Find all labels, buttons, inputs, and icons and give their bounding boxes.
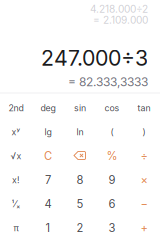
staticText: 4 [44,197,51,211]
staticText: − [140,197,147,211]
staticText: sin [74,103,86,113]
staticText: = 2.109.000 [93,14,148,26]
staticText: 3 [108,221,115,235]
button[interactable]: ( [96,120,128,144]
button[interactable]: 3 [96,216,128,240]
staticText: % [106,149,117,163]
staticText: = 82.333,3333 [68,75,148,89]
staticText: √x [10,151,21,161]
button[interactable]: deg [32,96,64,120]
staticText: tan [137,103,150,113]
button[interactable]: x! [0,168,32,192]
staticText: ÷ [140,149,147,163]
staticText: cos [104,103,119,113]
staticText: ¹⁄ₓ [11,199,20,209]
staticText: x! [12,175,20,185]
button[interactable]: − [128,192,160,216]
button[interactable]: ln [64,120,96,144]
button[interactable]: 1 [32,216,64,240]
button[interactable]: % [96,144,128,168]
staticText: 1 [45,221,50,235]
staticText: lg [44,127,51,137]
staticText: × [140,173,147,187]
staticText: 7 [45,173,51,187]
staticText: deg [40,103,55,113]
button[interactable]: ) [128,120,160,144]
button[interactable]: 2 [64,216,96,240]
button[interactable]: √x [0,144,32,168]
button[interactable]: tan [128,96,160,120]
button[interactable]: ÷ [128,144,160,168]
button[interactable]: lg [32,120,64,144]
button[interactable]: 5 [64,192,96,216]
button[interactable]: C [32,144,64,168]
button[interactable]: cos [96,96,128,120]
staticText: ln [76,127,83,137]
staticText: π [13,223,18,233]
button[interactable]: + [128,216,160,240]
staticText: 247.000÷3 [41,45,148,71]
button[interactable]: 8 [64,168,96,192]
staticText: 2 [76,221,83,235]
staticText: C [44,149,52,163]
staticText: ) [142,127,145,137]
staticText: 9 [108,173,115,187]
staticText: 5 [76,197,83,211]
button[interactable]: xʸ [0,120,32,144]
staticText: ( [110,127,113,137]
staticText: 4.218.000÷2 [90,3,148,15]
button[interactable]: 6 [96,192,128,216]
button[interactable]: sin [64,96,96,120]
button[interactable]: π [0,216,32,240]
button[interactable] [64,144,96,168]
button[interactable]: ¹⁄ₓ [0,192,32,216]
button[interactable]: × [128,168,160,192]
button[interactable]: 7 [32,168,64,192]
staticText: 2nd [8,103,23,113]
staticText: + [140,221,147,235]
staticText: 8 [76,173,83,187]
button[interactable]: 9 [96,168,128,192]
staticText: 6 [108,197,115,211]
staticText: xʸ [11,127,20,137]
button[interactable]: 4 [32,192,64,216]
button[interactable]: 2nd [0,96,32,120]
